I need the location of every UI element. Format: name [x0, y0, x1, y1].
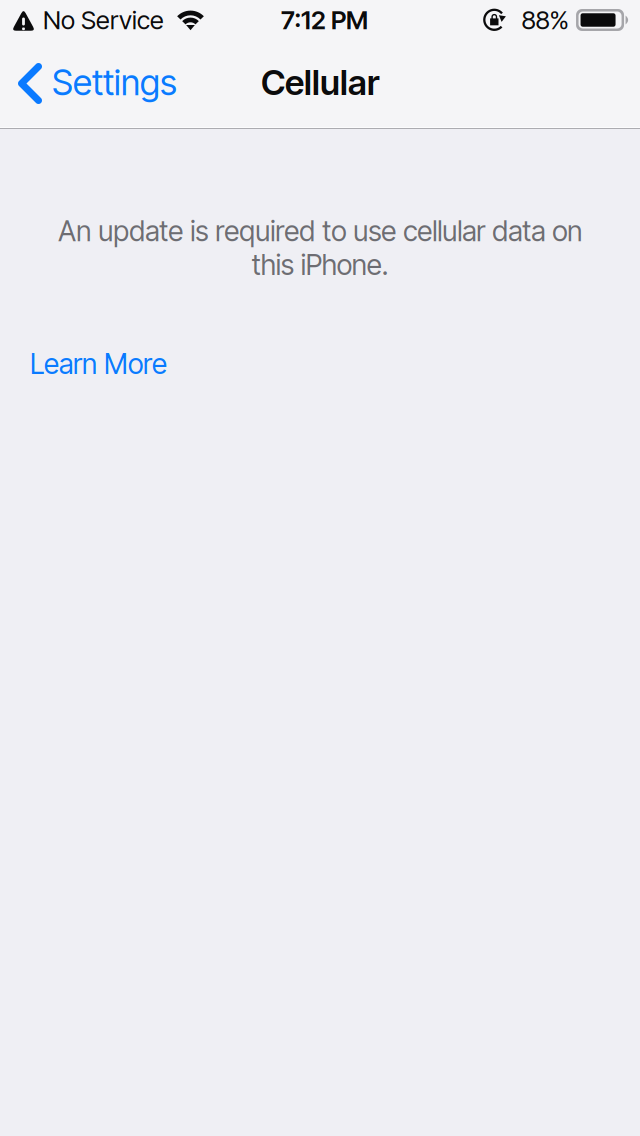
staticText: Cellular: [261, 61, 379, 103]
staticText: Learn More: [30, 347, 167, 381]
staticText: No Service: [43, 5, 164, 35]
staticText: Settings: [52, 61, 177, 104]
staticText: An update is required to use cellular da…: [58, 214, 582, 282]
staticText: 88%: [521, 5, 568, 35]
button[interactable]: Learn More: [0, 331, 193, 397]
staticText: 7:12 PM: [281, 5, 368, 35]
button[interactable]: Settings: [0, 44, 197, 123]
